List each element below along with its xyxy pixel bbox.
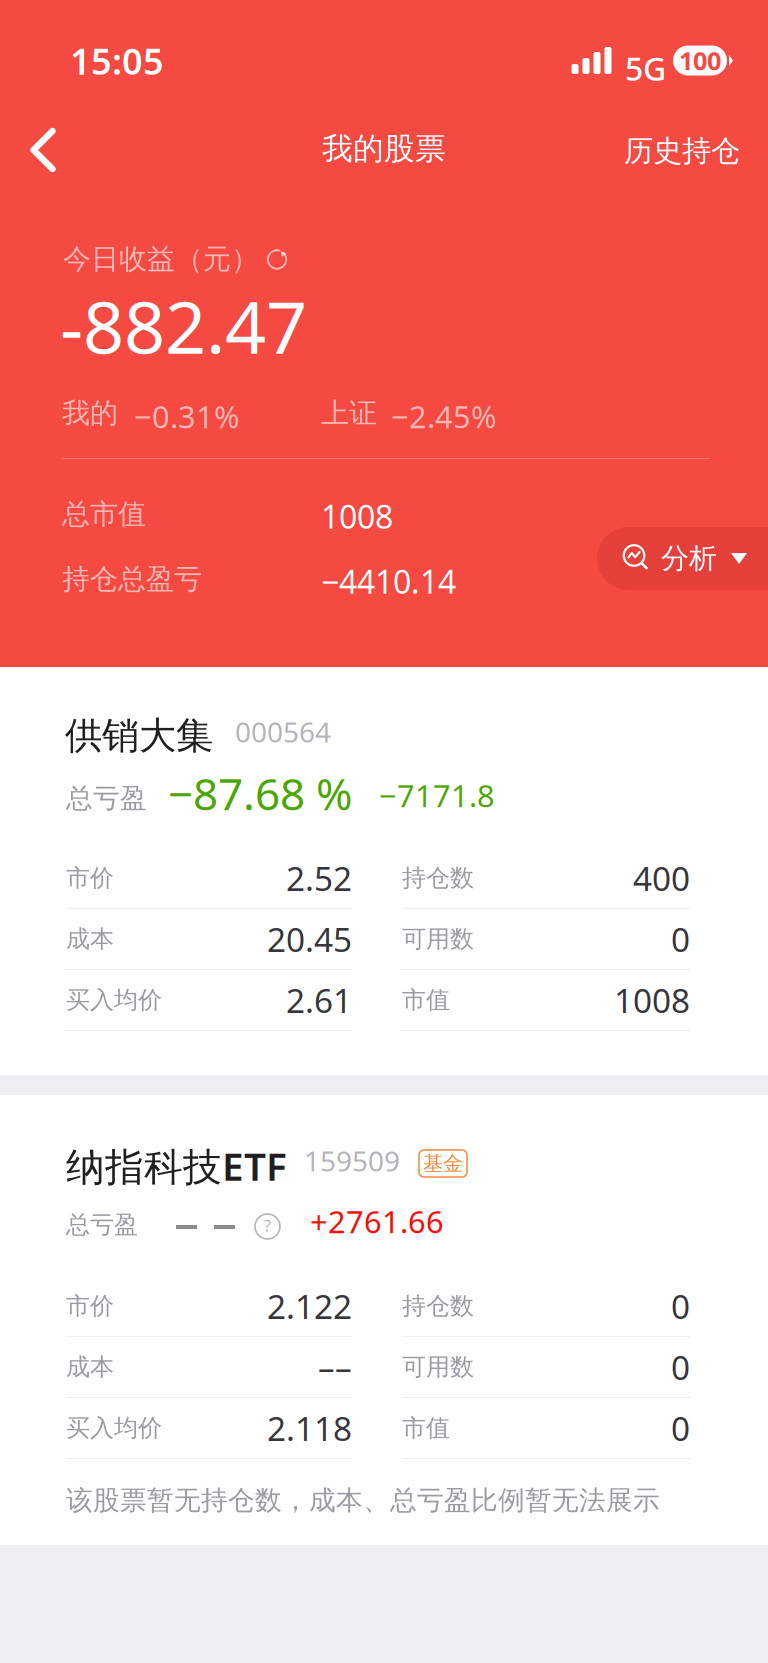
button[interactable]: 分析 <box>597 527 768 590</box>
staticText: 基金 <box>423 1151 463 1176</box>
staticText: 市价 <box>66 863 114 893</box>
staticText: −7171.8 <box>379 775 495 816</box>
staticText: −2.45% <box>391 396 496 437</box>
staticText: 1008 <box>614 978 690 1022</box>
staticText: 2.61 <box>286 978 352 1022</box>
staticText: –– <box>318 1345 352 1389</box>
staticText: 分析 <box>661 541 717 576</box>
staticText: 上证 <box>321 396 377 430</box>
staticText: −0.31% <box>134 396 239 437</box>
staticText: 1008 <box>321 495 393 537</box>
staticText: -882.47 <box>60 278 307 374</box>
staticText: 市值 <box>402 985 450 1015</box>
staticText: 5G <box>625 47 666 89</box>
staticText: 买入均价 <box>66 985 162 1015</box>
staticText: 纳指科技ETF <box>66 1140 287 1191</box>
staticText: 0 <box>671 1284 690 1328</box>
staticText: 0 <box>671 917 690 961</box>
staticText: ? <box>264 1215 271 1236</box>
staticText: 20.45 <box>267 917 352 961</box>
staticText: −87.68 % <box>168 764 353 822</box>
staticText: 该股票暂无持仓数，成本、总亏盈比例暂无法展示 <box>66 1484 660 1517</box>
staticText: +2761.66 <box>310 1201 444 1242</box>
staticText: 持仓总盈亏 <box>62 562 202 596</box>
staticText: 2.118 <box>267 1406 352 1450</box>
staticText: 2.52 <box>286 856 352 900</box>
staticText: 市值 <box>402 1413 450 1443</box>
staticText: 总亏盈 <box>66 1210 138 1239</box>
staticText: 持仓数 <box>402 1291 474 1321</box>
staticText: 15:05 <box>70 37 164 85</box>
staticText: 100 <box>679 44 721 77</box>
staticText: 买入均价 <box>66 1413 162 1443</box>
staticText: 总亏盈 <box>66 782 147 815</box>
staticText: 历史持仓 <box>624 133 740 169</box>
button[interactable]: 历史持仓 <box>560 131 740 171</box>
staticText: 400 <box>633 856 690 900</box>
staticText: 0 <box>671 1406 690 1450</box>
staticText: 我的 <box>62 396 118 430</box>
staticText: 总市值 <box>62 497 146 531</box>
staticText: 2.122 <box>267 1284 352 1328</box>
staticText: 可用数 <box>402 1352 474 1382</box>
staticText: 市价 <box>66 1291 114 1321</box>
staticText: 今日收益（元） <box>63 242 259 276</box>
staticText: 0 <box>671 1345 690 1389</box>
staticText: 可用数 <box>402 924 474 954</box>
staticText: 成本 <box>66 1352 114 1382</box>
button[interactable]: Refresh <box>266 248 288 270</box>
staticText: 持仓数 <box>402 863 474 893</box>
staticText: 我的股票 <box>322 130 446 168</box>
staticText: 成本 <box>66 924 114 954</box>
staticText: 159509 <box>304 1142 400 1179</box>
staticText: −4410.14 <box>321 560 456 602</box>
button[interactable]: Back <box>4 128 82 172</box>
staticText: 000564 <box>235 713 331 750</box>
staticText: 供销大集 <box>65 713 213 759</box>
